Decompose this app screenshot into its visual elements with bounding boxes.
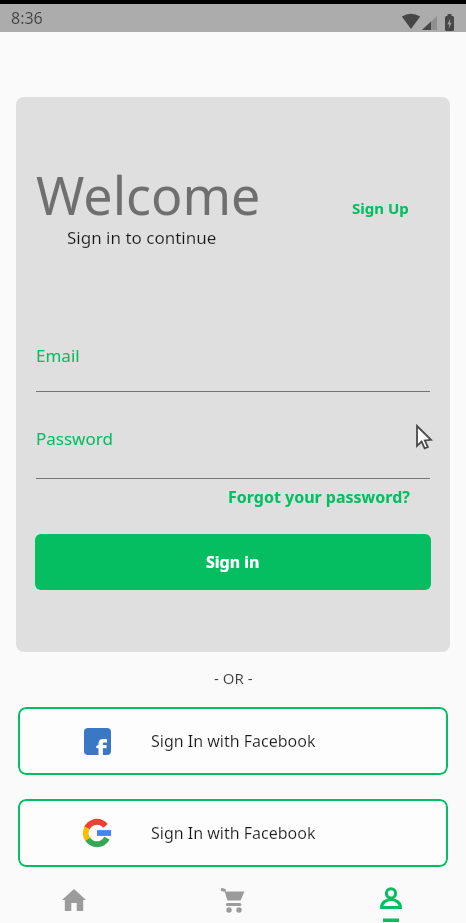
button[interactable]: Sign In with Facebook [18,799,448,867]
staticText: Password [36,427,113,450]
staticText: f [96,731,107,755]
button[interactable] [351,876,431,923]
staticText: 8:36 [11,7,43,29]
staticText: Sign in [206,551,260,573]
button[interactable]: Sign In with Facebook [18,707,448,775]
button[interactable]: Sign in [35,534,431,590]
staticText: Welcome [36,159,261,230]
button[interactable] [193,876,273,923]
staticText: Sign in to continue [67,226,217,249]
staticText: Email [36,344,80,367]
button[interactable] [34,876,114,923]
staticText: - OR - [214,668,253,688]
button[interactable]: Sign Up [330,190,430,226]
staticText: Sign In with Facebook [151,822,316,844]
button[interactable]: Forgot your password? [228,486,410,508]
staticText: Sign In with Facebook [151,730,316,752]
staticText: Sign Up [352,198,409,218]
